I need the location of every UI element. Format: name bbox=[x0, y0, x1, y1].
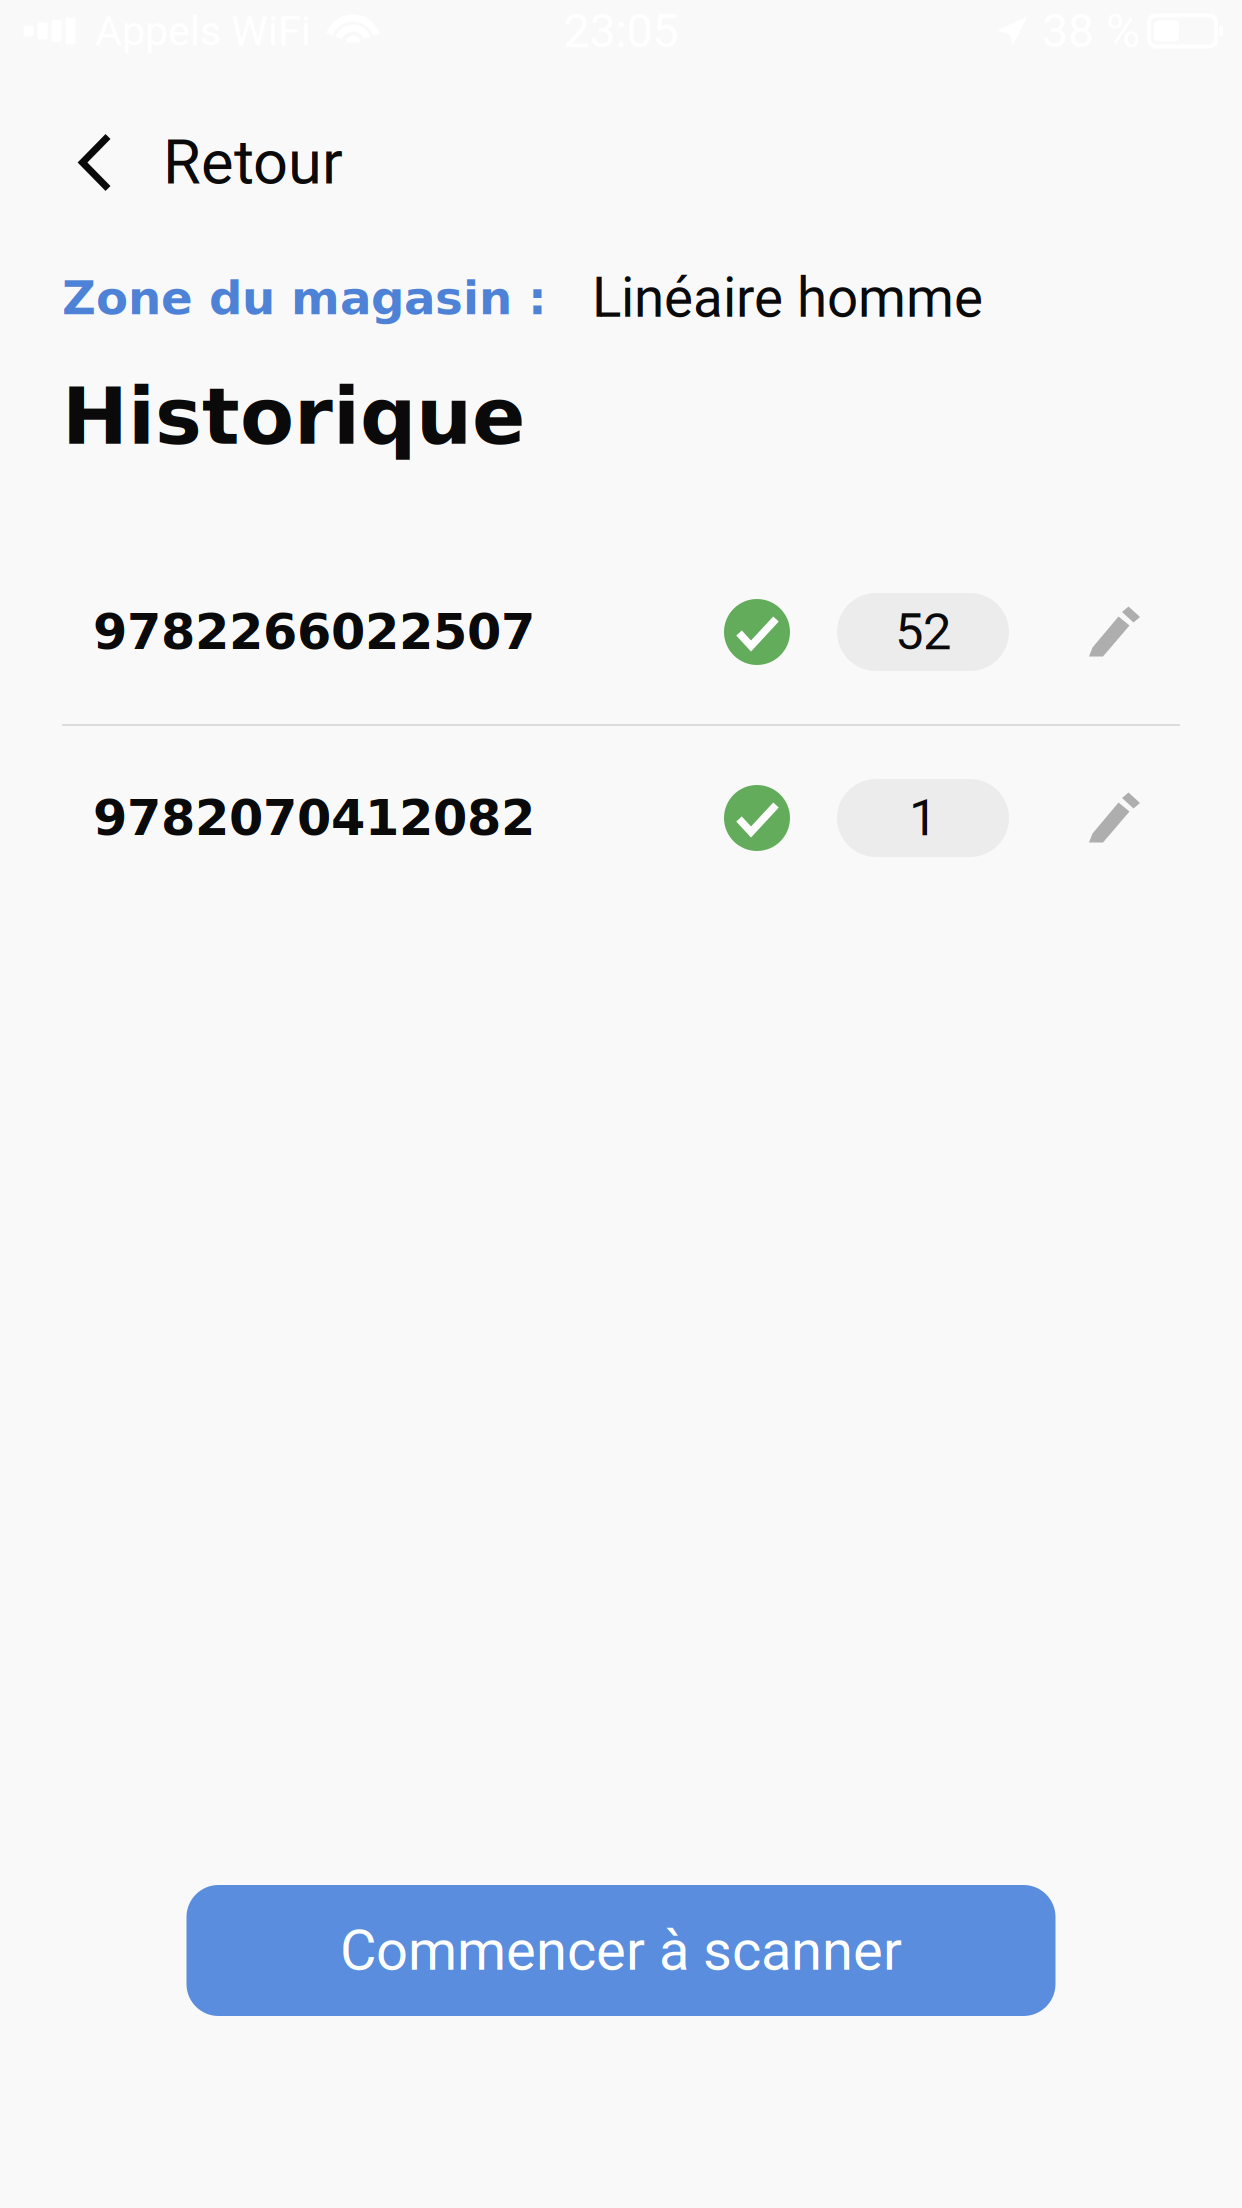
staticText: Retour bbox=[163, 127, 343, 198]
staticText: 9782070412082 bbox=[93, 789, 535, 847]
staticText: 9782266022507 bbox=[93, 603, 535, 661]
button[interactable]: Retour bbox=[0, 62, 383, 263]
staticText: Zone du magasin : bbox=[62, 271, 547, 325]
button[interactable]: Modifier la quantité bbox=[1089, 606, 1140, 657]
staticText: Linéaire homme bbox=[592, 266, 983, 330]
staticText: Commencer à scanner bbox=[340, 1918, 902, 1983]
button[interactable]: Modifier la quantité bbox=[1089, 792, 1140, 843]
button[interactable]: 1 bbox=[837, 779, 1009, 857]
staticText: Historique bbox=[62, 371, 525, 462]
button[interactable]: 52 bbox=[837, 593, 1009, 671]
staticText: 52 bbox=[895, 602, 951, 662]
button[interactable]: Commencer à scanner bbox=[186, 1885, 1055, 2016]
staticText: 1 bbox=[909, 788, 937, 848]
